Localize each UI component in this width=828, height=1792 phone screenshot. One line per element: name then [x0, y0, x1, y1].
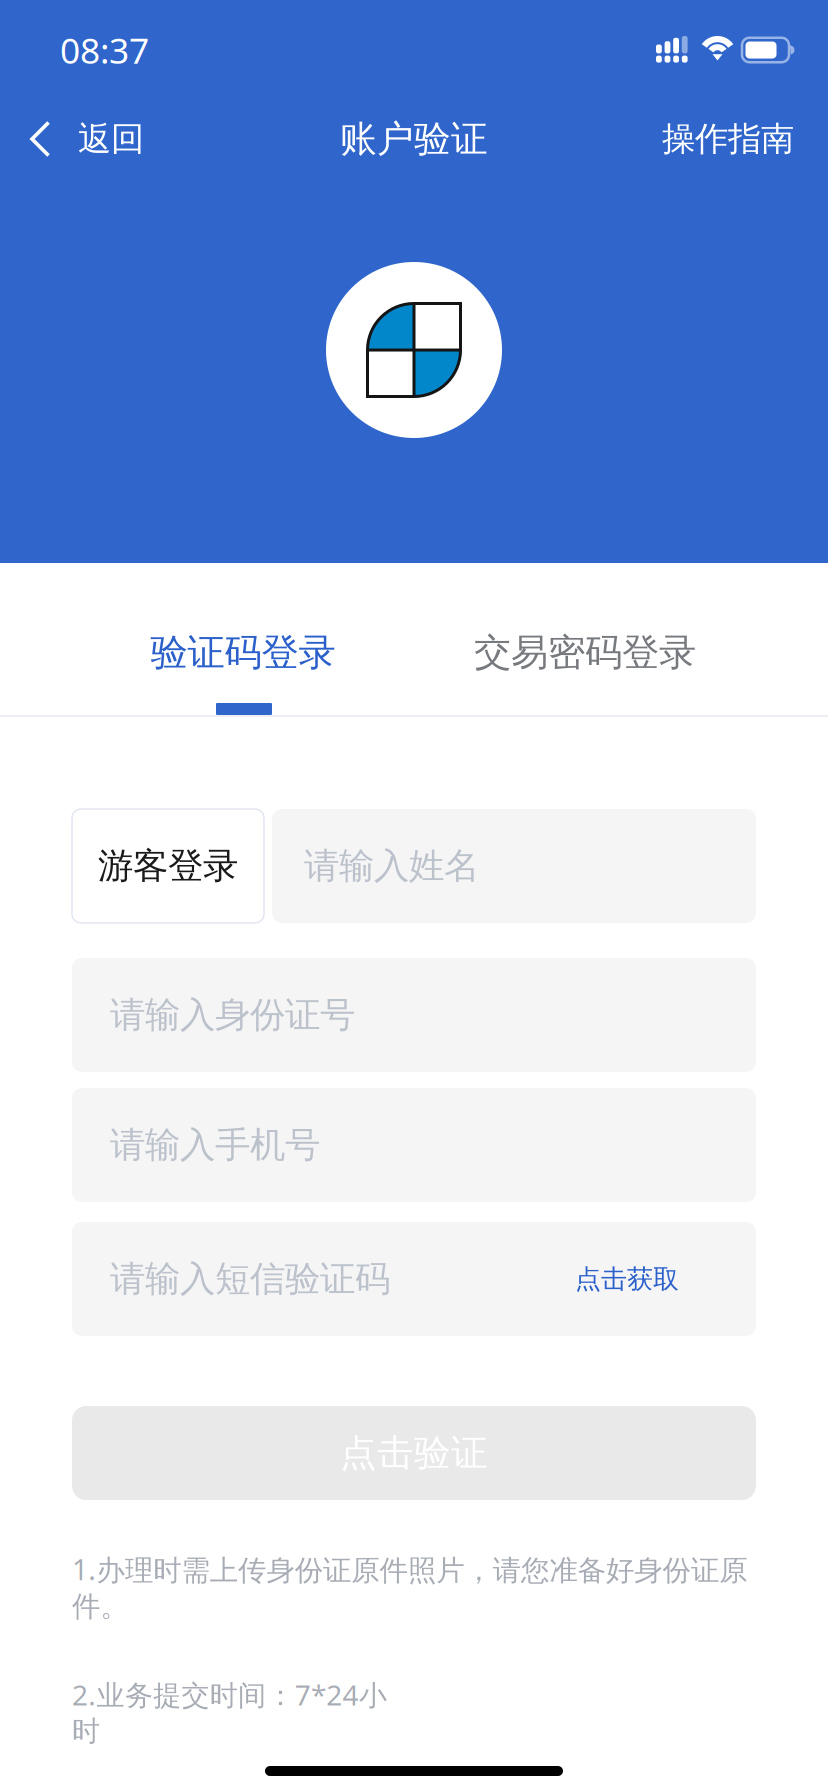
staticText: 交易密码登录: [474, 629, 696, 676]
staticText: 2.业务提交时间：7*24小时: [72, 1675, 387, 1749]
staticText: 点击验证: [340, 1430, 488, 1476]
staticText: 请输入身份证号: [110, 993, 355, 1037]
button[interactable]: 返回: [0, 92, 168, 186]
button[interactable]: 游客登录: [72, 809, 264, 923]
staticText: 验证码登录: [150, 629, 335, 676]
staticText: 游客登录: [98, 844, 238, 888]
staticText: 操作指南: [662, 118, 794, 160]
staticText: 08:37: [60, 26, 149, 74]
button[interactable]: 验证码登录: [72, 563, 414, 781]
staticText: 1.办理时需上传身份证原件照片，请您准备好身份证原件。: [72, 1550, 747, 1624]
staticText: 请输入手机号: [110, 1123, 320, 1167]
staticText: 点击获取: [575, 1263, 679, 1295]
staticText: 请输入短信验证码: [110, 1257, 390, 1301]
button[interactable]: 交易密码登录: [414, 563, 756, 781]
staticText: 账户验证: [340, 116, 488, 162]
button[interactable]: 操作指南: [638, 92, 828, 186]
button[interactable]: 点击获取: [575, 1222, 756, 1336]
staticText: 返回: [78, 118, 144, 160]
button[interactable]: 点击验证: [72, 1406, 756, 1500]
staticText: 请输入姓名: [304, 844, 479, 888]
